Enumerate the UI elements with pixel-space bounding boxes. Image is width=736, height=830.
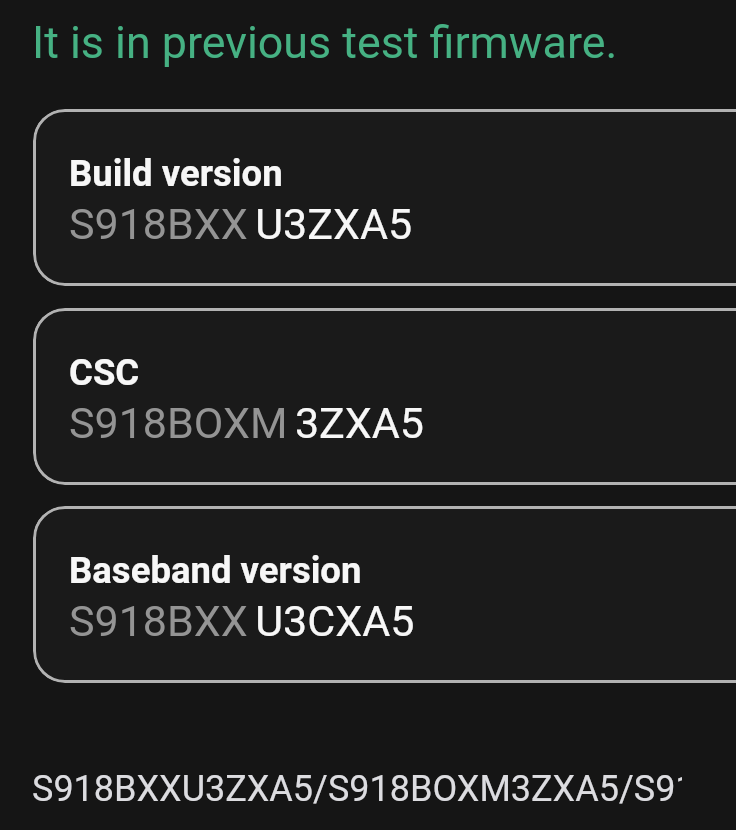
button[interactable]: Build version (33, 109, 736, 286)
staticText: Build version (69, 152, 283, 195)
staticText: S918BXX U3ZXA5 (69, 199, 413, 249)
staticText: S918BOXM 3ZXA5 (69, 398, 424, 448)
button[interactable]: Baseband version (33, 506, 736, 683)
staticText: S918BXXU3ZXA5/S918BOXM3ZXA5/S918BXXU3CXA… (32, 768, 682, 810)
staticText: It is in previous test firmware. (32, 16, 618, 69)
staticText: Baseband version (69, 549, 362, 592)
button[interactable]: CSC (33, 308, 736, 485)
staticText: S918BXX U3CXA5 (69, 596, 415, 646)
staticText: CSC (69, 351, 140, 394)
